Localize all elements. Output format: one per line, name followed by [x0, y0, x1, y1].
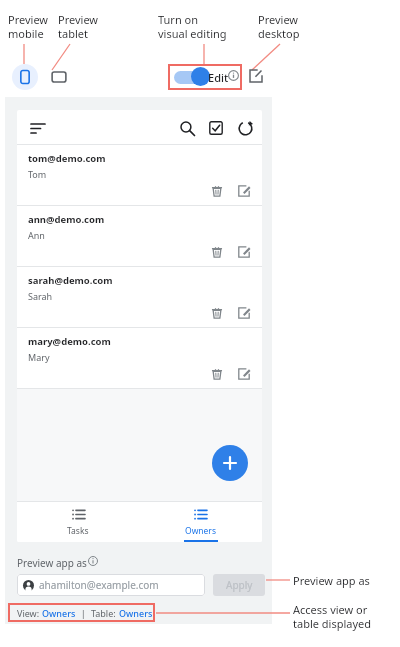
staticText: Preview app as	[293, 573, 370, 588]
button[interactable]: Delete	[207, 364, 227, 384]
staticText: Ann	[28, 229, 45, 241]
staticText: View:	[17, 607, 42, 619]
staticText: sarah@demo.com	[28, 274, 113, 287]
button[interactable]: mary@demo.com	[17, 328, 262, 389]
button[interactable]: ahamilton@example.com	[17, 574, 205, 596]
button[interactable]: Filter	[27, 117, 49, 139]
staticText: Mary	[28, 351, 50, 363]
button[interactable]	[174, 68, 204, 86]
staticText: Owners	[185, 525, 216, 537]
staticText: Owners	[42, 607, 76, 619]
staticText: Sarah	[28, 290, 53, 302]
staticText: Owners	[119, 607, 153, 619]
staticText: Apply	[226, 578, 253, 592]
button[interactable]: Edit	[234, 364, 254, 384]
button[interactable]: Edit	[234, 181, 254, 201]
button[interactable]: Preview tablet	[46, 64, 72, 90]
button[interactable]: View:	[17, 607, 153, 619]
staticText: Access view or table displayed	[293, 602, 372, 631]
button[interactable]: Preview mobile	[12, 64, 38, 90]
button[interactable]: Delete	[207, 303, 227, 323]
button[interactable]: tom@demo.com	[17, 145, 262, 206]
button[interactable]: Add	[212, 445, 248, 481]
button[interactable]: Preview desktop	[246, 66, 266, 86]
staticText: Tasks	[67, 525, 89, 537]
staticText: Tom	[28, 168, 47, 180]
button[interactable]: Owners	[139, 502, 262, 542]
staticText: Preview tablet	[58, 12, 99, 41]
staticText: ann@demo.com	[28, 213, 105, 226]
button[interactable]: Delete	[207, 242, 227, 262]
staticText: Preview app as	[17, 556, 87, 570]
staticText: Turn on visual editing	[158, 12, 227, 41]
staticText: tom@demo.com	[28, 152, 106, 165]
button[interactable]: Delete	[207, 181, 227, 201]
staticText: ahamilton@example.com	[39, 578, 159, 592]
button[interactable]: Edit	[234, 242, 254, 262]
button[interactable]: Apply	[213, 574, 265, 596]
staticText: |	[76, 607, 91, 619]
button[interactable]: Select	[204, 116, 228, 140]
staticText: Table:	[91, 607, 119, 619]
button[interactable]: ann@demo.com	[17, 206, 262, 267]
button[interactable]: Refresh	[233, 116, 257, 140]
staticText: Preview mobile	[8, 12, 49, 41]
staticText: Edit	[208, 70, 229, 85]
staticText: Preview desktop	[258, 12, 300, 41]
button[interactable]: sarah@demo.com	[17, 267, 262, 328]
button[interactable]: Search	[175, 116, 199, 140]
staticText: mary@demo.com	[28, 335, 111, 348]
button[interactable]: Tasks	[17, 502, 139, 542]
button[interactable]: Edit	[234, 303, 254, 323]
